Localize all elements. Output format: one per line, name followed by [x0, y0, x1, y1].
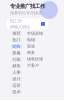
staticText: 设计 — [12, 76, 20, 81]
staticText: 找工作 — [10, 19, 22, 23]
staticText: 财务 — [12, 63, 20, 68]
staticText: 客服 — [12, 50, 20, 55]
button[interactable]: 大客户 — [27, 63, 43, 67]
staticText: 销售经理 — [27, 57, 43, 61]
staticText: 海量职位等你挑选 — [10, 11, 42, 15]
button[interactable]: 财务 — [11, 64, 22, 68]
staticText: 销售 — [12, 44, 20, 49]
staticText: 人事 — [12, 70, 20, 75]
staticText: 推荐 — [12, 31, 20, 36]
button[interactable]: 渠道 — [27, 44, 43, 48]
staticText: 行政 — [12, 57, 20, 62]
button[interactable]: 销售 — [11, 44, 22, 48]
staticText: 运营 — [12, 83, 20, 88]
staticText: 技术 — [12, 89, 20, 94]
staticText: 电销 — [27, 37, 35, 42]
button[interactable]: 销售经理 — [27, 57, 43, 61]
staticText: 商务 — [27, 50, 35, 55]
staticText: 热门 — [12, 37, 20, 42]
button[interactable]: 推荐 — [11, 31, 22, 35]
button[interactable]: 客服 — [11, 51, 22, 55]
button[interactable]: 人事 — [11, 70, 22, 74]
staticText: 市场营销 — [27, 31, 43, 36]
staticText: 渠道 — [27, 44, 35, 49]
staticText: 请输入职位 — [10, 24, 30, 29]
staticText: 大客户 — [27, 63, 39, 68]
button[interactable]: 运营 — [11, 83, 22, 87]
button[interactable]: 设计 — [11, 77, 22, 81]
button[interactable]: 商务 — [27, 51, 43, 55]
button[interactable]: 电销 — [27, 38, 43, 42]
button[interactable]: 热门 — [11, 38, 22, 42]
button[interactable]: 技术 — [11, 90, 22, 94]
button[interactable]: 行政 — [11, 57, 22, 61]
staticText: 专业推广找工作 — [10, 3, 45, 10]
button[interactable]: 市场营销 — [27, 31, 43, 35]
